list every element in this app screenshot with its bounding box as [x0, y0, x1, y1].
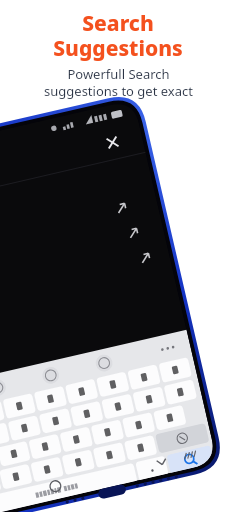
staticText: Powerfull Search suggestions to get exac…	[44, 65, 193, 117]
staticText: Search Suggestions	[53, 9, 183, 62]
button[interactable]	[0, 202, 120, 218]
